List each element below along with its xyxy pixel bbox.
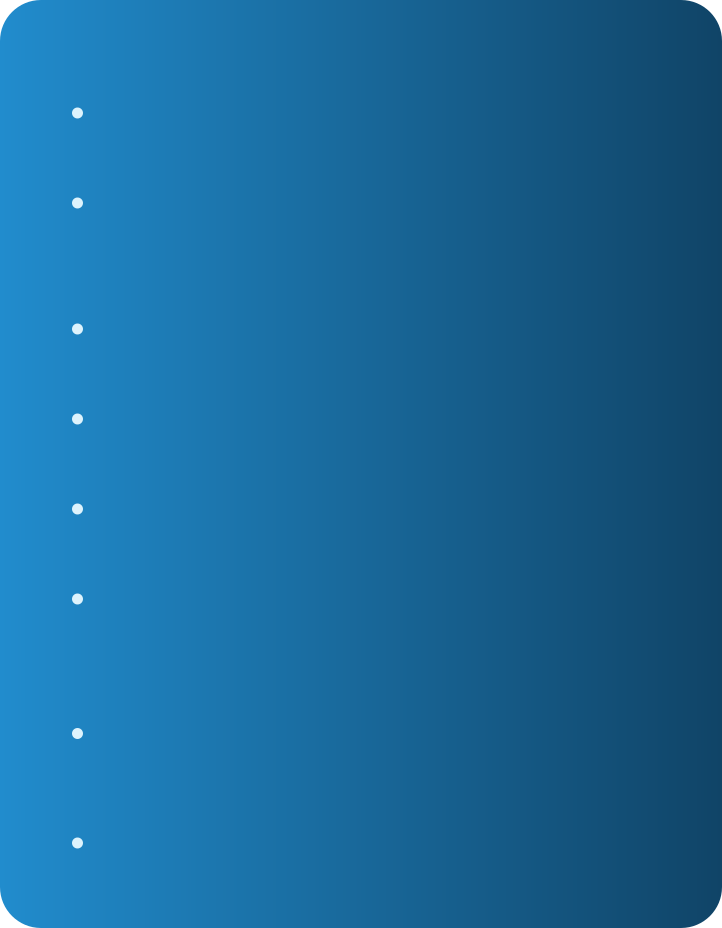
staticText: Unlimited access to every workout and cl…: [109, 98, 582, 128]
button[interactable]: Apple Watch and Health app sync: [72, 593, 666, 604]
button[interactable]: Live coaching sessions every single day: [72, 323, 666, 334]
staticText: Detailed progress, strain and recovery i…: [109, 494, 608, 524]
staticText: Live coaching sessions every single day: [109, 314, 531, 344]
button[interactable]: Offline downloads so you can train anywh…: [72, 413, 666, 424]
staticText: Personalised training plans built around…: [109, 188, 658, 218]
staticText: Apple Watch and Health app sync: [109, 584, 468, 614]
button[interactable]: Detailed progress, strain and recovery i…: [72, 503, 666, 514]
button[interactable]: Share your plan with up to five family m…: [72, 728, 666, 739]
button[interactable]: Personalised training plans built around…: [72, 197, 666, 208]
staticText: Cancel any time — no questions asked: [109, 828, 522, 858]
button[interactable]: Cancel any time — no questions asked: [72, 837, 666, 848]
staticText: Offline downloads so you can train anywh…: [109, 404, 593, 434]
button[interactable]: Unlimited access to every workout and cl…: [72, 107, 666, 118]
staticText: Share your plan with up to five family m…: [109, 718, 617, 748]
